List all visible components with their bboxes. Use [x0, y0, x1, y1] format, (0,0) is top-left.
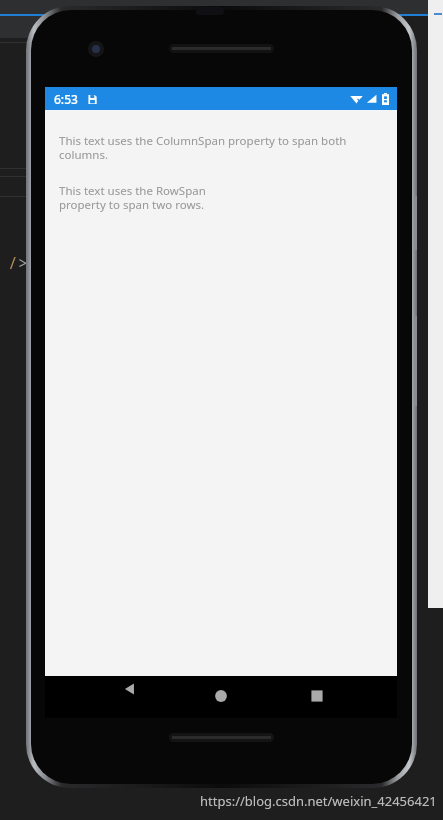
staticText: 6:53	[54, 91, 78, 107]
button[interactable]: Recent apps	[310, 689, 324, 703]
staticText: https://blog.csdn.net/weixin_42456421	[200, 792, 437, 810]
button[interactable]: Back	[123, 676, 443, 718]
staticText: This text uses the ColumnSpan property t…	[59, 133, 383, 162]
button[interactable]: This text uses the RowSpan property to s…	[59, 183, 383, 212]
staticText: /	[8, 252, 18, 274]
button[interactable]: Home	[214, 689, 228, 703]
staticText: >	[18, 252, 28, 274]
button[interactable]: This text uses the ColumnSpan property t…	[59, 133, 383, 162]
staticText: This text uses the RowSpan property to s…	[59, 183, 206, 212]
